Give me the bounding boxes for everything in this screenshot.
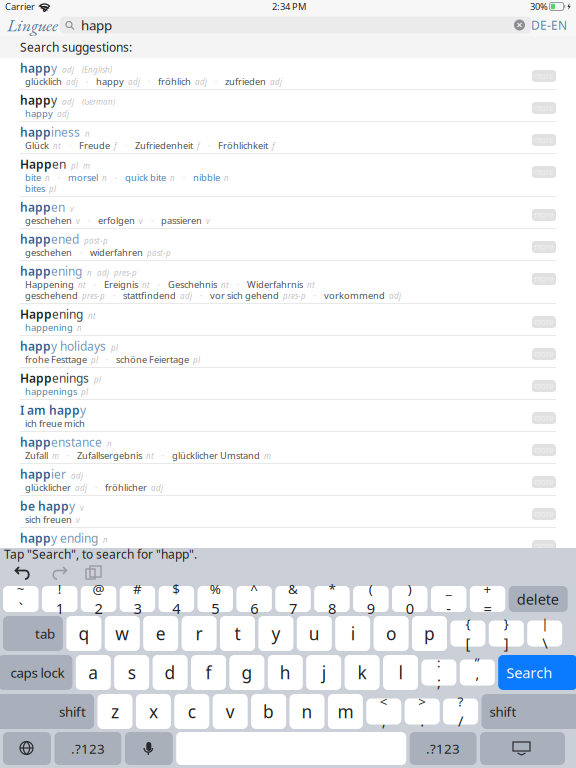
button[interactable]: Happ: [0, 154, 576, 197]
staticText: Zufriedenheit: [135, 139, 193, 152]
button[interactable]: c: [174, 694, 209, 729]
button[interactable]: k: [345, 655, 380, 690]
button[interactable]: m: [328, 694, 363, 729]
button[interactable]: }: [489, 620, 524, 646]
button[interactable]: r: [182, 616, 217, 651]
button[interactable]: Search: [498, 655, 576, 690]
staticText: happ: [20, 530, 51, 546]
button[interactable]: d: [153, 655, 188, 690]
button[interactable]: |: [527, 620, 562, 646]
staticText: n: [45, 173, 50, 183]
button[interactable]: <: [366, 698, 401, 724]
button[interactable]: happ: [0, 464, 576, 496]
button[interactable]: ): [392, 586, 427, 612]
button[interactable]: be happ: [0, 496, 576, 528]
staticText: gutes Ende: [201, 545, 249, 558]
button[interactable]: i: [335, 616, 370, 651]
button[interactable]: happ: [0, 197, 576, 229]
button[interactable]: q: [66, 616, 101, 651]
button[interactable]: y: [258, 616, 293, 651]
button[interactable]: {: [450, 620, 485, 646]
button[interactable]: shift: [481, 694, 576, 729]
staticText: fröhlich: [158, 75, 191, 88]
button[interactable]: DE-EN: [531, 17, 567, 33]
button[interactable]: x: [136, 694, 171, 729]
button[interactable]: >: [405, 698, 440, 724]
button[interactable]: l: [383, 655, 418, 690]
staticText: sich freuen: [25, 513, 72, 526]
button[interactable]: j: [306, 655, 341, 690]
staticText: y holidays: [51, 338, 106, 354]
button[interactable]: shift: [0, 694, 94, 729]
button[interactable]: happ: [0, 122, 576, 154]
staticText: ·: [86, 280, 104, 290]
button[interactable]: +: [470, 586, 505, 612]
button[interactable]: s: [114, 655, 149, 690]
button[interactable]: Undo: [14, 566, 32, 580]
button[interactable]: tab: [3, 616, 63, 651]
button[interactable]: I am happ: [0, 400, 576, 432]
button[interactable]: happ: [0, 336, 576, 368]
staticText: 3: [133, 599, 141, 618]
button[interactable]: !: [42, 586, 77, 612]
button[interactable]: Redo: [50, 566, 68, 580]
button[interactable]: caps lock: [0, 655, 72, 690]
button[interactable]: Dismiss keyboard: [480, 732, 565, 765]
button[interactable]: t: [220, 616, 255, 651]
button[interactable]: z: [97, 694, 132, 729]
button[interactable]: happ: [0, 229, 576, 261]
button[interactable]: u: [297, 616, 332, 651]
staticText: more: [534, 541, 554, 551]
button[interactable]: a: [76, 655, 111, 690]
staticText: nibble: [193, 171, 220, 184]
button[interactable]: #: [120, 586, 155, 612]
button[interactable]: Dictate: [125, 732, 173, 765]
button[interactable]: o: [374, 616, 409, 651]
button[interactable]: .?123: [54, 732, 121, 765]
button[interactable]: ”: [460, 659, 495, 685]
button[interactable]: Happ: [0, 304, 576, 336]
button[interactable]: n: [289, 694, 324, 729]
staticText: s: [128, 661, 136, 684]
button[interactable]: delete: [509, 586, 568, 612]
button[interactable]: happ: [0, 528, 576, 560]
button[interactable]: Paste: [86, 566, 102, 580]
button[interactable]: .?123: [410, 732, 477, 765]
staticText: n: [85, 128, 90, 139]
staticText: +: [483, 580, 491, 598]
button[interactable]: _: [431, 586, 466, 612]
button[interactable]: %: [197, 586, 233, 612]
button[interactable]: happ: [0, 58, 576, 90]
button[interactable]: g: [229, 655, 264, 690]
staticText: ·: [87, 483, 105, 493]
staticText: nt: [53, 141, 61, 151]
button[interactable]: (: [353, 586, 389, 612]
staticText: c: [188, 700, 196, 723]
button[interactable]: ~: [3, 586, 38, 612]
button[interactable]: Next keyboard: [3, 732, 51, 765]
button[interactable]: w: [105, 616, 140, 651]
button[interactable]: ?: [443, 698, 478, 724]
button[interactable]: h: [268, 655, 303, 690]
button[interactable]: b: [251, 694, 286, 729]
staticText: (: [369, 580, 373, 598]
staticText: &: [288, 580, 298, 598]
staticText: Widerfahrnis: [247, 278, 303, 291]
button[interactable]: ^: [236, 586, 272, 612]
staticText: ·: [59, 451, 77, 461]
button[interactable]: *: [314, 586, 350, 612]
button[interactable]: happ: [0, 261, 576, 304]
button[interactable]: &: [275, 586, 311, 612]
button[interactable]: @: [81, 586, 116, 612]
button[interactable]: $: [159, 586, 194, 612]
button[interactable]: :: [421, 659, 456, 685]
button[interactable]: Happ: [0, 368, 576, 400]
button[interactable]: Clear search: [514, 19, 525, 30]
button[interactable]: f: [191, 655, 226, 690]
button[interactable]: e: [143, 616, 178, 651]
button[interactable]: p: [412, 616, 447, 651]
button[interactable]: v: [213, 694, 248, 729]
button[interactable]: happ: [0, 90, 576, 122]
button[interactable]: happ: [0, 432, 576, 464]
